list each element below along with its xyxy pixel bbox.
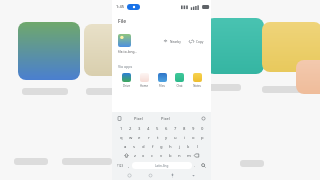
- button[interactable]: z: [130, 151, 139, 160]
- staticText: 0: [201, 126, 204, 132]
- staticText: r: [148, 135, 150, 141]
- staticText: 7: [174, 126, 177, 132]
- button[interactable]: g: [157, 142, 166, 151]
- button[interactable]: q: [117, 133, 126, 142]
- button[interactable]: 1: [117, 124, 126, 133]
- staticText: i: [184, 135, 186, 141]
- staticText: 1:45: [116, 4, 124, 9]
- button[interactable]: 9: [189, 124, 198, 133]
- button[interactable]: .: [192, 161, 198, 170]
- staticText: z: [134, 153, 136, 159]
- staticText: ,: [128, 163, 130, 169]
- staticText: 8: [183, 126, 186, 132]
- button[interactable]: d: [139, 142, 148, 151]
- staticText: 3: [138, 126, 141, 132]
- staticText: o: [192, 135, 195, 141]
- button[interactable]: Files: [154, 73, 170, 88]
- button[interactable]: 2: [126, 124, 135, 133]
- button[interactable]: Home: [136, 73, 152, 88]
- button[interactable]: k: [184, 142, 193, 151]
- button[interactable]: 4: [144, 124, 153, 133]
- staticText: b: [169, 153, 172, 159]
- button[interactable]: t: [153, 133, 162, 142]
- staticText: e: [138, 135, 141, 141]
- staticText: s: [133, 144, 136, 150]
- staticText: h: [169, 144, 172, 150]
- button[interactable]: v: [157, 151, 166, 160]
- staticText: q: [120, 135, 123, 141]
- button[interactable]: Mic: [168, 171, 177, 180]
- button[interactable]: Nearby: [162, 38, 182, 45]
- staticText: Drive: [123, 84, 130, 88]
- staticText: Files: [159, 84, 165, 88]
- staticText: y: [165, 135, 168, 141]
- button[interactable]: j: [175, 142, 184, 151]
- button[interactable]: Chat: [171, 73, 187, 88]
- button[interactable]: c: [148, 151, 157, 160]
- staticText: Via apps: [118, 64, 133, 69]
- button[interactable]: o: [189, 133, 198, 142]
- staticText: Latin-Eng: [155, 164, 169, 168]
- button[interactable]: Latin-Eng: [132, 162, 192, 169]
- staticText: k: [187, 144, 190, 150]
- button[interactable]: 5: [153, 124, 162, 133]
- button[interactable]: 0: [198, 124, 207, 133]
- button[interactable]: a: [121, 142, 130, 151]
- button[interactable]: m: [184, 151, 193, 160]
- staticText: n: [178, 153, 181, 159]
- button[interactable]: b: [166, 151, 175, 160]
- button[interactable]: Home: [146, 171, 155, 180]
- button[interactable]: Clipboard: [116, 115, 123, 122]
- button[interactable]: x: [139, 151, 148, 160]
- button[interactable]: i: [180, 133, 189, 142]
- button[interactable]: Copy: [188, 38, 205, 45]
- button[interactable]: s: [130, 142, 139, 151]
- button[interactable]: ,: [126, 161, 132, 170]
- staticText: 1: [120, 126, 123, 132]
- staticText: x: [142, 153, 145, 159]
- button[interactable]: ?123: [115, 161, 126, 170]
- staticText: l: [197, 144, 199, 150]
- button[interactable]: Notes: [189, 73, 205, 88]
- staticText: j: [179, 144, 181, 150]
- staticText: Pixel: [161, 116, 170, 121]
- button[interactable]: y: [162, 133, 171, 142]
- button[interactable]: Key: [123, 151, 130, 160]
- button[interactable]: [118, 34, 131, 47]
- staticText: 9: [192, 126, 195, 132]
- staticText: File: [118, 18, 127, 25]
- staticText: Nearby: [170, 40, 181, 44]
- button[interactable]: w: [126, 133, 135, 142]
- button[interactable]: Search: [198, 161, 208, 170]
- button[interactable]: f: [148, 142, 157, 151]
- staticText: 2: [129, 126, 132, 132]
- button[interactable]: Settings: [200, 115, 207, 122]
- staticText: v: [160, 153, 163, 159]
- button[interactable]: Hide keyboard: [189, 171, 198, 180]
- button[interactable]: Drive: [118, 73, 134, 88]
- button[interactable]: r: [144, 133, 153, 142]
- staticText: 5: [156, 126, 159, 132]
- button[interactable]: p: [198, 133, 207, 142]
- staticText: t: [157, 135, 159, 141]
- button[interactable]: 7: [171, 124, 180, 133]
- staticText: w: [129, 135, 133, 141]
- button[interactable]: e: [135, 133, 144, 142]
- button[interactable]: Key: [193, 151, 200, 160]
- button[interactable]: 3: [135, 124, 144, 133]
- button[interactable]: Emoji: [125, 171, 134, 180]
- button[interactable]: 8: [180, 124, 189, 133]
- button[interactable]: n: [175, 151, 184, 160]
- staticText: ?123: [117, 164, 124, 168]
- staticText: u: [174, 135, 177, 141]
- staticText: g: [160, 144, 163, 150]
- staticText: Copy: [196, 40, 204, 44]
- button[interactable]: l: [193, 142, 202, 151]
- button[interactable]: u: [171, 133, 180, 142]
- staticText: d: [142, 144, 145, 150]
- staticText: a: [124, 144, 127, 150]
- staticText: Home: [140, 84, 148, 88]
- button[interactable]: 6: [162, 124, 171, 133]
- button[interactable]: h: [166, 142, 175, 151]
- staticText: Chat: [176, 84, 183, 88]
